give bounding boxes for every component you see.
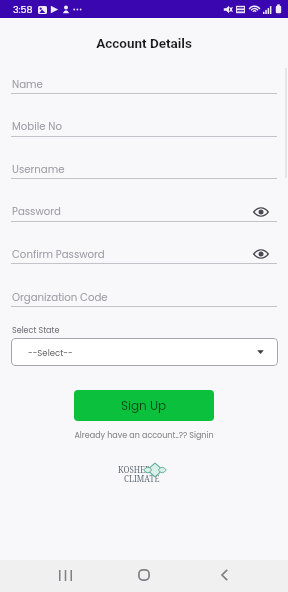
button[interactable]: Show password xyxy=(252,203,270,221)
button[interactable]: Mobile No xyxy=(0,112,288,140)
button[interactable]: Back xyxy=(209,561,239,591)
staticText: Sign Up xyxy=(121,397,167,414)
button[interactable]: Recent apps xyxy=(50,561,80,591)
staticText: KOSHER xyxy=(118,464,151,475)
button[interactable]: Organization Code xyxy=(0,283,288,311)
staticText: Name xyxy=(12,77,43,91)
staticText: Password xyxy=(12,204,61,218)
staticText: Select State xyxy=(12,325,60,336)
button[interactable]: Confirm Password xyxy=(0,240,288,268)
button[interactable]: Sign Up xyxy=(74,390,214,421)
button[interactable]: Home xyxy=(129,561,159,591)
button[interactable]: Name xyxy=(0,70,288,98)
staticText: Mobile No xyxy=(12,119,62,133)
staticText: Username xyxy=(12,162,65,176)
staticText: --Select-- xyxy=(28,347,73,359)
button[interactable]: Password xyxy=(0,197,288,225)
staticText: CLIMATE xyxy=(124,473,160,484)
staticText: Organization Code xyxy=(12,290,108,304)
button[interactable]: Username xyxy=(0,155,288,183)
button[interactable]: --Select-- xyxy=(11,338,278,366)
staticText: Confirm Password xyxy=(12,247,105,261)
staticText: 3:58 xyxy=(13,3,33,16)
button[interactable]: Show password xyxy=(252,245,270,263)
staticText: Account Details xyxy=(0,35,288,51)
button[interactable]: Already have an account..?? Signin xyxy=(0,430,288,441)
